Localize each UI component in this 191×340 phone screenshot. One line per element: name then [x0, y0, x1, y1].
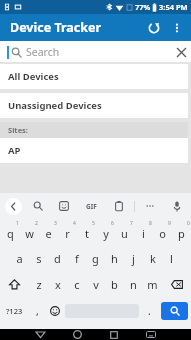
- button[interactable]: b: [105, 271, 124, 297]
- button[interactable]: j: [124, 245, 143, 271]
- button[interactable]: a: [10, 245, 29, 271]
- button[interactable]: r: [58, 219, 77, 245]
- staticText: r: [65, 226, 70, 241]
- staticText: Unassigned Devices: [8, 99, 102, 112]
- staticText: j: [132, 251, 135, 266]
- button[interactable]: m: [143, 271, 162, 297]
- staticText: ,: [36, 304, 39, 318]
- staticText: b: [111, 277, 118, 292]
- button[interactable]: Refresh: [142, 16, 166, 40]
- staticText: 3:54 PM: [159, 2, 188, 12]
- button[interactable]: Clipboard: [109, 196, 129, 216]
- staticText: AP: [8, 144, 21, 157]
- staticText: .: [148, 304, 151, 318]
- staticText: u: [121, 226, 128, 241]
- staticText: Sites:: [8, 125, 28, 135]
- button[interactable]: Search: [28, 196, 48, 216]
- staticText: p: [178, 226, 185, 241]
- staticText: e: [45, 226, 52, 241]
- button[interactable]: More: [140, 196, 160, 216]
- button[interactable]: v: [86, 271, 105, 297]
- button[interactable]: i: [134, 219, 153, 245]
- button[interactable]: n: [124, 271, 143, 297]
- staticText: o: [159, 226, 166, 241]
- staticText: f: [75, 251, 79, 266]
- button[interactable]: z: [29, 271, 48, 297]
- staticText: x: [55, 277, 61, 292]
- button[interactable]: x: [48, 271, 67, 297]
- button[interactable]: Hide keyboard: [139, 329, 163, 340]
- staticText: w: [25, 226, 34, 241]
- button[interactable]: Shift: [0, 271, 29, 297]
- staticText: q: [7, 226, 14, 241]
- button[interactable]: q: [0, 219, 20, 245]
- staticText: v: [93, 277, 99, 292]
- staticText: y: [103, 226, 109, 241]
- button[interactable]: y: [96, 219, 115, 245]
- staticText: 77%: [135, 2, 151, 12]
- button[interactable]: Emoji: [46, 297, 63, 325]
- button[interactable]: GIF: [80, 195, 102, 217]
- staticText: n: [130, 277, 137, 292]
- staticText: 5: [92, 220, 95, 227]
- staticText: ?123: [6, 306, 23, 316]
- button[interactable]: Stickers: [54, 196, 74, 216]
- staticText: 7: [130, 220, 133, 227]
- staticText: g: [92, 251, 99, 266]
- button[interactable]: e: [39, 219, 58, 245]
- staticText: m: [147, 277, 158, 292]
- staticText: 4: [73, 220, 76, 227]
- button[interactable]: ,: [29, 297, 46, 325]
- button[interactable]: f: [67, 245, 86, 271]
- button[interactable]: c: [67, 271, 86, 297]
- staticText: All Devices: [8, 70, 59, 83]
- button[interactable]: ?123: [0, 297, 29, 325]
- button[interactable]: s: [29, 245, 48, 271]
- button[interactable]: Back: [5, 198, 22, 215]
- button[interactable]: g: [86, 245, 105, 271]
- button[interactable]: More options: [166, 17, 188, 39]
- button[interactable]: Clear search: [171, 42, 191, 62]
- button[interactable]: t: [77, 219, 96, 245]
- staticText: i: [142, 226, 145, 241]
- staticText: d: [54, 251, 61, 266]
- staticText: c: [74, 277, 80, 292]
- staticText: 6: [111, 220, 114, 227]
- staticText: 2: [35, 220, 38, 227]
- button[interactable]: Search: [161, 302, 188, 320]
- staticText: 1: [16, 220, 19, 227]
- staticText: 9: [168, 220, 171, 227]
- button[interactable]: p: [172, 219, 191, 245]
- button[interactable]: All Devices: [0, 64, 188, 89]
- button[interactable]: u: [115, 219, 134, 245]
- button[interactable]: Back: [28, 329, 52, 340]
- button[interactable]: Home: [65, 329, 89, 340]
- button[interactable]: h: [105, 245, 124, 271]
- staticText: z: [36, 277, 42, 292]
- staticText: 3: [54, 220, 57, 227]
- button[interactable]: Voice input: [167, 196, 187, 216]
- button[interactable]: Unassigned Devices: [0, 93, 188, 118]
- button[interactable]: o: [153, 219, 172, 245]
- button[interactable]: w: [20, 219, 39, 245]
- button[interactable]: AP: [0, 138, 188, 163]
- staticText: Device Tracker: [10, 19, 102, 36]
- staticText: h: [111, 251, 118, 266]
- staticText: k: [150, 251, 156, 266]
- staticText: s: [36, 251, 42, 266]
- button[interactable]: k: [143, 245, 162, 271]
- button[interactable]: Recents: [102, 329, 126, 340]
- button[interactable]: Backspace: [162, 271, 191, 297]
- staticText: t: [85, 226, 89, 241]
- staticText: l: [170, 251, 173, 266]
- staticText: a: [16, 251, 23, 266]
- staticText: 0: [187, 220, 190, 227]
- staticText: Search: [26, 45, 60, 59]
- staticText: 8: [149, 220, 152, 227]
- button[interactable]: l: [162, 245, 181, 271]
- button[interactable]: Search: [0, 41, 191, 62]
- button[interactable]: d: [48, 245, 67, 271]
- button[interactable]: .: [141, 297, 158, 325]
- staticText: GIF: [86, 202, 97, 211]
